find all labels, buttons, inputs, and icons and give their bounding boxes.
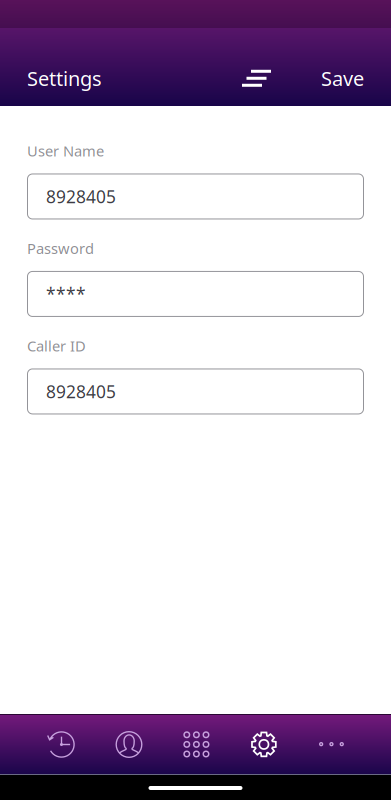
staticText: 8928405 — [46, 185, 116, 208]
button[interactable]: Keypad — [163, 715, 230, 774]
staticText: Save — [321, 65, 364, 92]
button[interactable]: Settings — [230, 715, 298, 774]
button[interactable]: 8928405 — [27, 173, 364, 219]
staticText: User Name — [27, 141, 104, 160]
button[interactable]: Recents — [28, 715, 95, 774]
button[interactable]: Settings — [27, 65, 102, 92]
button[interactable]: Save — [321, 65, 364, 92]
staticText: 8928405 — [46, 380, 116, 403]
button[interactable]: Contacts — [95, 715, 163, 774]
staticText: Password — [27, 238, 94, 258]
button[interactable]: **** — [27, 271, 364, 317]
button[interactable]: 8928405 — [27, 368, 364, 414]
button[interactable]: More — [298, 715, 365, 774]
staticText: **** — [46, 282, 86, 305]
staticText: Caller ID — [27, 336, 86, 355]
staticText: Settings — [27, 65, 102, 92]
button[interactable]: Sort — [242, 70, 271, 87]
